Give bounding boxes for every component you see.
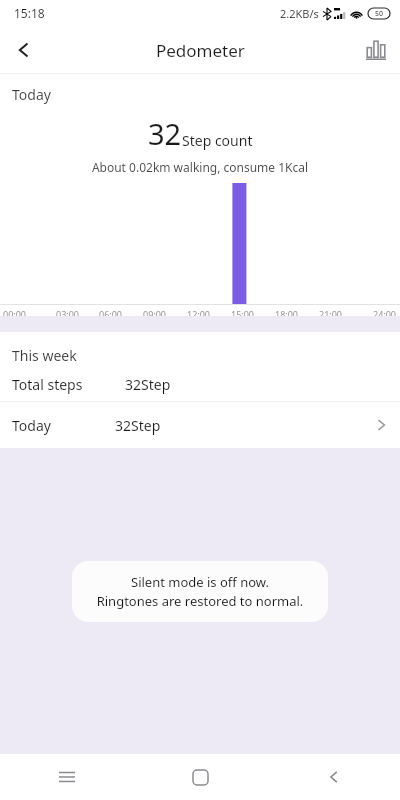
button[interactable]: Recent apps: [0, 754, 134, 800]
staticText: About 0.02km walking, consume 1Kcal: [0, 159, 400, 175]
staticText: 50: [375, 9, 384, 19]
staticText: 03:00: [56, 308, 80, 316]
staticText: Today: [12, 85, 51, 104]
staticText: Silent mode is off now. Ringtones are re…: [88, 573, 312, 610]
staticText: 18:00: [275, 308, 299, 316]
staticText: 32: [148, 114, 182, 153]
staticText: 09:00: [143, 308, 167, 316]
staticText: 00:00: [3, 308, 27, 316]
button[interactable]: Home: [134, 754, 267, 800]
staticText: 32Step: [115, 416, 161, 435]
button[interactable]: Today: [0, 402, 400, 448]
staticText: 15:00: [231, 308, 255, 316]
staticText: 32Step: [125, 375, 171, 394]
staticText: 15:18: [14, 5, 45, 21]
staticText: 2.2KB/s: [280, 6, 319, 21]
staticText: Pedometer: [156, 39, 245, 62]
button[interactable]: Back: [267, 754, 400, 800]
staticText: This week: [12, 346, 77, 365]
staticText: 24:00: [373, 308, 397, 316]
staticText: 21:00: [319, 308, 343, 316]
button[interactable]: Statistics: [352, 26, 400, 74]
staticText: Total steps: [12, 375, 83, 394]
staticText: Step count: [182, 131, 253, 150]
staticText: 06:00: [99, 308, 123, 316]
staticText: Today: [12, 416, 51, 435]
button[interactable]: Back: [0, 26, 48, 74]
staticText: 12:00: [187, 308, 211, 316]
button[interactable]: Total steps: [0, 367, 400, 401]
